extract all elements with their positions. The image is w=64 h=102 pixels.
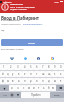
staticText: Новый покупатель? xyxy=(1,23,21,26)
button[interactable]: Backspace xyxy=(56,85,64,91)
staticText: ц xyxy=(7,72,9,76)
staticText: подарки сувениры xyxy=(10,8,27,10)
button[interactable]: 123 xyxy=(0,92,9,98)
button[interactable]: Зарегистрируйтесь xyxy=(23,23,43,26)
staticText: ы xyxy=(7,79,9,83)
button[interactable]: б xyxy=(46,85,51,91)
button[interactable]: ю xyxy=(51,85,56,91)
button[interactable]: 8 xyxy=(46,64,52,70)
staticText: 7 xyxy=(42,65,44,69)
button[interactable]: р xyxy=(28,78,34,84)
button[interactable]: Войти xyxy=(1,39,63,46)
staticText: 5 xyxy=(30,65,32,69)
staticText: в xyxy=(12,79,14,83)
staticText: г xyxy=(36,72,38,76)
staticText: б xyxy=(48,86,50,90)
staticText: 0 xyxy=(60,65,62,69)
button[interactable]: 6 xyxy=(34,64,40,70)
staticText: э xyxy=(60,79,62,83)
button[interactable]: в xyxy=(10,78,16,84)
staticText: 8 xyxy=(48,65,50,69)
button[interactable]: х xyxy=(58,71,64,77)
staticText: ф xyxy=(2,79,4,83)
staticText: книги игрушки канцтовары xyxy=(10,6,35,8)
staticText: и xyxy=(33,86,35,90)
staticText: н xyxy=(30,72,32,76)
button[interactable]: е xyxy=(22,71,28,77)
button[interactable]: ж xyxy=(52,78,58,84)
button[interactable]: щ xyxy=(46,71,52,77)
staticText: Ввод xyxy=(54,94,60,97)
button[interactable]: Войти через Google xyxy=(50,56,55,61)
staticText: Войти xyxy=(28,41,36,44)
staticText: 123 xyxy=(3,94,7,97)
button[interactable]: п xyxy=(22,78,28,84)
button[interactable]: а xyxy=(16,78,22,84)
staticText: т xyxy=(38,86,40,90)
button[interactable]: м xyxy=(26,85,31,91)
button[interactable]: 4 xyxy=(21,64,28,70)
button[interactable]: 5 xyxy=(28,64,34,70)
button[interactable]: Shift xyxy=(0,85,9,91)
staticText: е xyxy=(24,72,26,76)
staticText: д xyxy=(48,79,50,83)
button[interactable]: й xyxy=(0,71,5,77)
staticText: я xyxy=(11,86,13,90)
button[interactable]: Голосовой ввод xyxy=(15,92,21,98)
staticText: Вход в Лабиринт xyxy=(1,15,40,21)
button[interactable]: г xyxy=(34,71,40,77)
button[interactable]: л xyxy=(40,78,46,84)
button[interactable]: ь xyxy=(41,85,46,91)
button[interactable]: э xyxy=(58,78,64,84)
button[interactable]: 0 xyxy=(58,64,64,70)
staticText: с xyxy=(23,86,25,90)
button[interactable]: Восстановить пароль xyxy=(1,48,24,51)
button[interactable]: ш xyxy=(40,71,46,77)
button[interactable]: я xyxy=(9,85,15,91)
staticText: ЛАБИРИНТ xyxy=(10,3,23,6)
button[interactable]: Войти через ВКонтакте xyxy=(9,56,14,61)
button[interactable]: 7 xyxy=(40,64,46,70)
button[interactable]: Пробел xyxy=(21,92,50,98)
button[interactable]: Сменить язык xyxy=(9,92,15,98)
staticText: з xyxy=(54,72,56,76)
staticText: 4 xyxy=(24,65,26,69)
button[interactable]: д xyxy=(46,78,52,84)
button[interactable]: 2 xyxy=(7,64,14,70)
button[interactable]: Ввод xyxy=(50,92,64,98)
button[interactable]: Войти через Facebook xyxy=(36,56,41,61)
staticText: щ xyxy=(48,72,51,76)
button[interactable]: 9 xyxy=(52,64,58,70)
button[interactable]: к xyxy=(16,71,22,77)
staticText: у xyxy=(12,72,14,76)
button[interactable]: с xyxy=(21,85,26,91)
button[interactable]: и xyxy=(31,85,36,91)
button[interactable]: з xyxy=(52,71,58,77)
staticText: 9 xyxy=(54,65,56,69)
staticText: к xyxy=(18,72,20,76)
staticText: Лабиринт xyxy=(3,1,12,3)
button[interactable]: у xyxy=(10,71,16,77)
button[interactable]: 1 xyxy=(0,64,7,70)
button[interactable]: Войти через Twitter xyxy=(23,56,28,61)
button[interactable]: 3 xyxy=(14,64,21,70)
button[interactable]: о xyxy=(34,78,40,84)
staticText: Пробел xyxy=(31,93,41,97)
staticText: и@ xyxy=(1,28,5,31)
staticText: р xyxy=(30,79,32,83)
button[interactable]: ф xyxy=(0,78,5,84)
staticText: л xyxy=(42,79,44,83)
staticText: о xyxy=(36,79,38,83)
staticText: в личный кабинет xyxy=(1,19,21,22)
staticText: ь xyxy=(43,86,45,90)
staticText: 14:32 xyxy=(54,1,59,3)
button[interactable]: н xyxy=(28,71,34,77)
staticText: 6 xyxy=(36,65,38,69)
staticText: ю xyxy=(52,86,55,90)
button[interactable]: т xyxy=(36,85,41,91)
button[interactable]: ы xyxy=(5,78,10,84)
staticText: ш xyxy=(42,72,45,76)
button[interactable]: ч xyxy=(15,85,21,91)
staticText: ж xyxy=(54,79,56,83)
button[interactable]: ц xyxy=(5,71,10,77)
